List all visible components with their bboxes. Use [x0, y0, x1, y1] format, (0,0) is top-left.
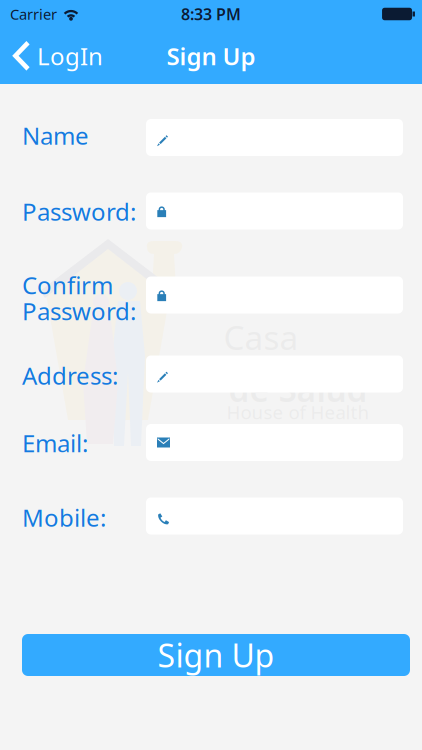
staticText: Password:	[22, 196, 136, 227]
button[interactable]	[146, 276, 403, 313]
staticText: Mobile:	[22, 502, 106, 533]
staticText: Confirm	[22, 269, 113, 301]
button[interactable]: LogIn	[0, 31, 115, 81]
button[interactable]	[146, 424, 403, 461]
button[interactable]	[146, 119, 403, 156]
staticText: Address:	[22, 360, 118, 391]
button[interactable]: Sign Up	[22, 634, 410, 676]
button[interactable]	[146, 192, 403, 229]
staticText: de Salud	[228, 367, 367, 411]
staticText: House of Health	[226, 400, 369, 424]
staticText: Sign Up	[157, 634, 274, 676]
staticText: Password:	[22, 295, 136, 327]
staticText: Email:	[22, 427, 88, 459]
button[interactable]	[146, 355, 403, 392]
staticText: Casa	[223, 315, 298, 359]
staticText: Name	[22, 120, 89, 151]
staticText: Carrier	[10, 4, 57, 24]
staticText: Sign Up	[166, 40, 255, 72]
button[interactable]	[146, 497, 403, 534]
staticText: LogIn	[37, 40, 103, 72]
staticText: 8:33 PM	[181, 3, 241, 25]
